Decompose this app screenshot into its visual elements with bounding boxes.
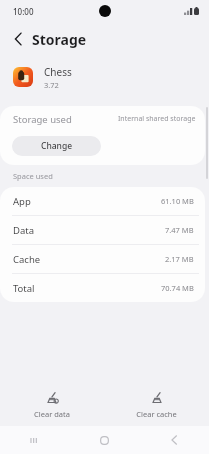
- staticText: 3.72: [44, 80, 59, 90]
- staticText: Data: [13, 224, 35, 237]
- button[interactable]: Data: [0, 216, 205, 244]
- staticText: Total: [13, 282, 35, 295]
- staticText: Clear cache: [136, 409, 177, 419]
- staticText: 10:00: [13, 6, 34, 17]
- staticText: Space used: [13, 171, 53, 181]
- staticText: Cache: [13, 253, 41, 266]
- button[interactable]: Total: [0, 274, 205, 302]
- staticText: Storage used: [13, 113, 72, 126]
- button[interactable]: Storage used: [0, 106, 205, 132]
- staticText: Clear data: [34, 409, 70, 419]
- staticText: 70.74 MB: [161, 283, 194, 293]
- button[interactable]: Change: [12, 136, 101, 156]
- staticText: Change: [41, 140, 73, 152]
- staticText: Chess: [44, 65, 72, 79]
- button[interactable]: Home: [69, 426, 139, 454]
- staticText: 7.47 MB: [165, 225, 194, 235]
- button[interactable]: Back: [8, 29, 28, 49]
- button[interactable]: Back: [139, 426, 209, 454]
- button[interactable]: App: [0, 187, 205, 215]
- button[interactable]: Clear data: [0, 384, 104, 426]
- staticText: Storage: [32, 30, 87, 49]
- staticText: Internal shared storage: [118, 114, 196, 124]
- staticText: App: [13, 195, 31, 208]
- button[interactable]: Recents: [0, 426, 69, 454]
- staticText: 2.17 MB: [165, 254, 194, 264]
- button[interactable]: Cache: [0, 245, 205, 273]
- button[interactable]: Clear cache: [104, 384, 209, 426]
- staticText: 61.10 MB: [161, 196, 194, 206]
